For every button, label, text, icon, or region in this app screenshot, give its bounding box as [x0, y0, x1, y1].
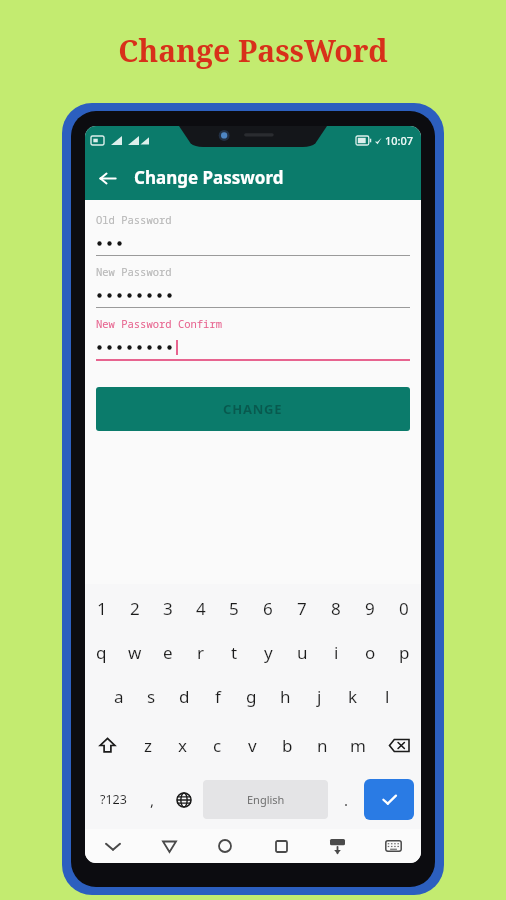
button[interactable]: z [130, 718, 165, 772]
staticText: 10:07 [385, 133, 414, 148]
staticText: o [365, 641, 376, 664]
button[interactable]: t [217, 630, 251, 674]
button[interactable]: m [340, 718, 375, 772]
staticText: 0 [399, 597, 409, 620]
staticText: e [163, 641, 173, 664]
button[interactable]: ?123 [89, 772, 137, 827]
button[interactable]: c [200, 718, 235, 772]
button[interactable]: o [353, 630, 387, 674]
button[interactable]: q [85, 630, 118, 674]
staticText: g [246, 685, 257, 708]
button[interactable]: i [319, 630, 353, 674]
staticText: Change Password [134, 166, 284, 189]
button[interactable]: Recents [253, 829, 309, 863]
staticText: b [282, 734, 293, 757]
button[interactable]: , [137, 772, 167, 827]
staticText: 5 [229, 597, 239, 620]
button[interactable]: a [102, 674, 135, 718]
button[interactable]: d [168, 674, 201, 718]
button[interactable]: CHANGE [96, 387, 410, 431]
button[interactable]: s [135, 674, 168, 718]
button[interactable]: Back [141, 829, 197, 863]
staticText: 2 [130, 597, 140, 620]
button[interactable]: v [235, 718, 270, 772]
button[interactable]: 7 [285, 586, 319, 630]
staticText: New Password Confirm [96, 317, 222, 331]
button[interactable]: k [336, 674, 370, 718]
button[interactable]: h [268, 674, 302, 718]
button[interactable]: x [165, 718, 200, 772]
staticText: w [128, 641, 142, 664]
staticText: p [399, 641, 410, 664]
button[interactable]: 2 [118, 586, 151, 630]
staticText: k [348, 685, 358, 708]
staticText: 4 [196, 597, 206, 620]
button[interactable]: Old Password [96, 213, 410, 256]
button[interactable]: e [151, 630, 184, 674]
staticText: i [334, 641, 339, 664]
button[interactable]: 6 [251, 586, 285, 630]
staticText: z [144, 734, 152, 757]
button[interactable]: Backspace [375, 718, 421, 772]
button[interactable]: 0 [387, 586, 421, 630]
staticText: j [317, 685, 322, 708]
staticText: Old Password [96, 213, 172, 227]
button[interactable]: n [305, 718, 340, 772]
button[interactable]: Back [89, 160, 125, 196]
staticText: m [350, 734, 366, 757]
staticText: . [344, 790, 349, 810]
staticText: 7 [297, 597, 307, 620]
button[interactable]: j [302, 674, 336, 718]
button[interactable]: Hide keyboard [309, 829, 365, 863]
staticText: q [96, 641, 107, 664]
staticText: y [264, 641, 273, 664]
staticText: CHANGE [223, 400, 283, 418]
staticText: x [178, 734, 187, 757]
button[interactable]: Shift [85, 718, 130, 772]
button[interactable]: 5 [217, 586, 251, 630]
staticText: l [385, 685, 390, 708]
button[interactable]: f [201, 674, 234, 718]
button[interactable]: p [387, 630, 421, 674]
staticText: a [114, 685, 124, 708]
button[interactable]: English [203, 780, 328, 819]
staticText: n [317, 734, 328, 757]
staticText: 1 [97, 597, 107, 620]
button[interactable]: r [184, 630, 217, 674]
staticText: v [248, 734, 257, 757]
staticText: c [213, 734, 222, 757]
button[interactable]: 1 [85, 586, 118, 630]
button[interactable]: Switch keyboard [365, 829, 421, 863]
staticText: , [150, 790, 155, 810]
button[interactable]: l [370, 674, 404, 718]
staticText: 6 [263, 597, 273, 620]
button[interactable]: b [270, 718, 305, 772]
staticText: ?123 [100, 791, 127, 808]
button[interactable]: New Password [96, 265, 410, 308]
button[interactable]: Collapse keyboard [85, 829, 141, 863]
button[interactable]: w [118, 630, 151, 674]
staticText: r [197, 641, 205, 664]
staticText: u [297, 641, 308, 664]
button[interactable]: 3 [151, 586, 184, 630]
button[interactable]: 4 [184, 586, 217, 630]
button[interactable]: 8 [319, 586, 353, 630]
staticText: New Password [96, 265, 172, 279]
staticText: s [147, 685, 156, 708]
button[interactable]: . [331, 772, 361, 827]
staticText: 3 [163, 597, 173, 620]
staticText: h [280, 685, 291, 708]
button[interactable]: Enter [364, 779, 414, 820]
staticText: 9 [365, 597, 375, 620]
button[interactable]: u [285, 630, 319, 674]
staticText: Change PassWord [118, 30, 388, 71]
staticText: English [247, 792, 285, 807]
staticText: t [231, 641, 238, 664]
button[interactable]: y [251, 630, 285, 674]
button[interactable]: New Password Confirm [96, 317, 410, 361]
button[interactable]: 9 [353, 586, 387, 630]
button[interactable]: Change language [167, 772, 200, 827]
button[interactable]: g [234, 674, 268, 718]
button[interactable]: Home [197, 829, 253, 863]
staticText: f [215, 685, 221, 708]
